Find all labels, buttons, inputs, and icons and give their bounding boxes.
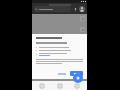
button[interactable] — [56, 71, 68, 76]
button[interactable]: Saved — [70, 81, 84, 90]
button[interactable]: Directions — [73, 73, 83, 83]
button[interactable]: Explore — [35, 81, 49, 90]
button[interactable] — [70, 71, 83, 76]
button[interactable]: Layers — [80, 16, 85, 21]
button[interactable]: Commute — [53, 81, 67, 90]
button[interactable]: Voice search — [73, 7, 78, 12]
button[interactable] — [34, 6, 71, 12]
button[interactable]: Compass — [80, 27, 85, 32]
button[interactable]: Account — [79, 6, 85, 12]
